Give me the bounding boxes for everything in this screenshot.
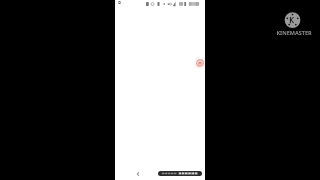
button[interactable]: Back	[134, 170, 142, 178]
button[interactable]: Screen recording	[158, 171, 202, 176]
button[interactable]: Record	[192, 55, 208, 71]
staticText: KINEMASTER	[276, 29, 312, 36]
